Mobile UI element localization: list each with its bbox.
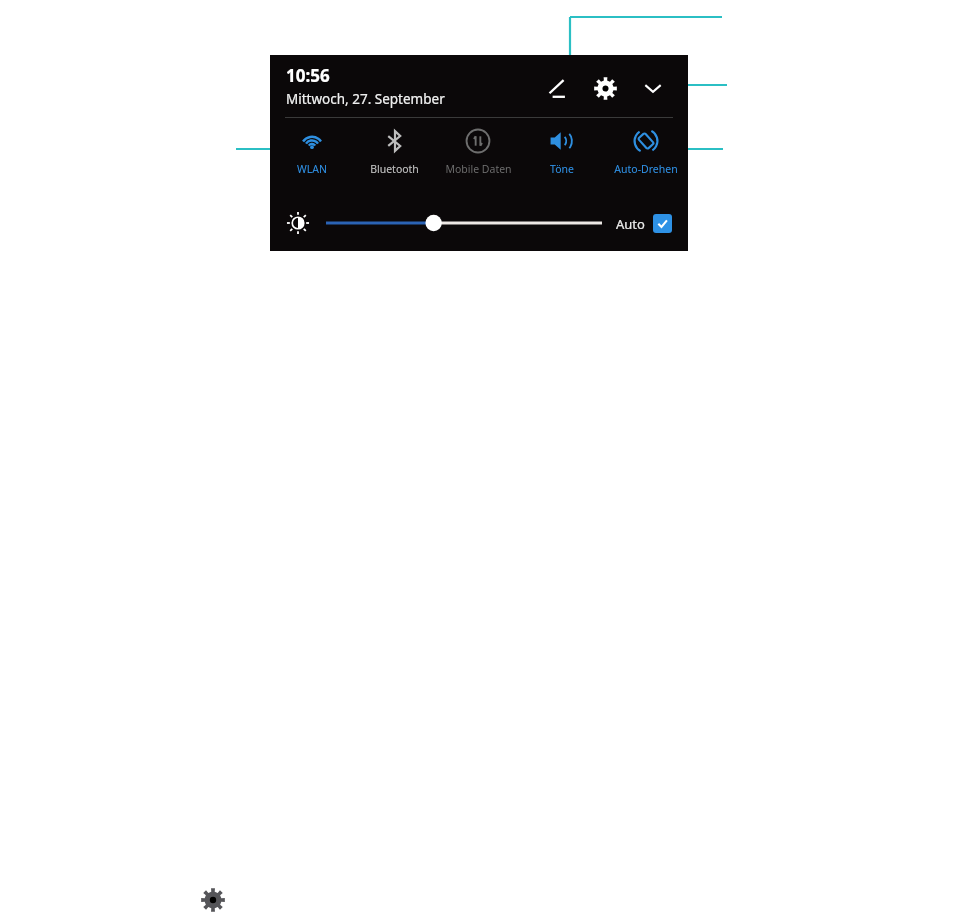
button[interactable]: Brightness [326, 211, 602, 235]
staticText: WLAN [297, 162, 327, 176]
button[interactable]: Settings [588, 71, 622, 105]
button[interactable]: Auto-Drehen [604, 126, 688, 176]
button[interactable]: Settings [199, 886, 227, 914]
button[interactable]: WLAN [270, 126, 353, 176]
button[interactable]: Collapse [636, 71, 670, 105]
button[interactable]: Auto [616, 214, 672, 233]
staticText: Mittwoch, 27. September [286, 90, 445, 108]
button[interactable]: Edit [540, 71, 574, 105]
button[interactable]: Mobile Daten [436, 126, 520, 176]
staticText: Auto [616, 215, 645, 233]
button[interactable]: Bluetooth [353, 126, 436, 176]
staticText: Mobile Daten [445, 162, 512, 176]
button[interactable]: Töne [520, 126, 604, 176]
staticText: Auto-Drehen [614, 162, 678, 176]
staticText: Töne [550, 162, 574, 176]
staticText: 10:56 [286, 64, 330, 87]
staticText: Bluetooth [370, 162, 419, 176]
